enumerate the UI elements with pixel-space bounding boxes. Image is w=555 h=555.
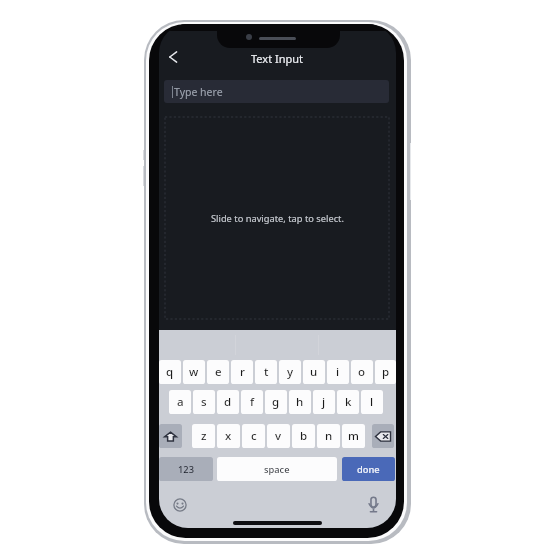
button[interactable]: g [265,390,287,414]
button[interactable]: o [351,360,373,384]
button[interactable]: 123 [159,457,213,481]
staticText: v [275,428,282,444]
button[interactable]: z [192,424,215,448]
button[interactable]: Back [162,46,184,68]
staticText: s [201,394,207,410]
button[interactable]: w [183,360,205,384]
staticText: g [272,394,280,410]
button[interactable]: done [342,457,395,481]
staticText: e [215,364,222,380]
button[interactable]: a [169,390,191,414]
staticText: u [310,364,318,380]
button[interactable]: space [217,457,337,481]
staticText: c [251,428,257,444]
button[interactable]: m [342,424,365,448]
staticText: p [382,364,390,380]
button[interactable]: b [292,424,315,448]
button[interactable]: Backspace [372,424,394,448]
staticText: 123 [178,463,194,476]
button[interactable]: h [289,390,311,414]
staticText: space [264,463,290,476]
button[interactable]: Type here [164,80,389,103]
staticText: Type here [174,85,223,99]
staticText: k [345,394,352,410]
staticText: o [358,364,366,380]
staticText: l [370,394,374,410]
button[interactable]: y [279,360,301,384]
staticText: b [300,428,308,444]
staticText: z [201,428,207,444]
button[interactable]: k [337,390,359,414]
button[interactable]: i [327,360,349,384]
button[interactable]: r [231,360,253,384]
staticText: a [177,394,184,410]
staticText: y [287,364,294,380]
button[interactable]: x [217,424,240,448]
staticText: Slide to navigate, tap to select. [211,212,344,225]
staticText: r [240,364,245,380]
button[interactable]: f [241,390,263,414]
staticText: w [189,364,199,380]
staticText: Text Input [251,51,304,66]
button[interactable]: j [313,390,335,414]
staticText: n [325,428,333,444]
button[interactable]: q [159,360,181,384]
button[interactable]: Emoji [173,498,187,512]
button[interactable]: Shift [159,424,182,448]
staticText: done [357,463,380,476]
staticText: j [322,394,326,410]
button[interactable]: p [375,360,396,384]
staticText: i [336,364,340,380]
button[interactable]: c [242,424,265,448]
button[interactable]: s [193,390,215,414]
button[interactable]: v [267,424,290,448]
button[interactable]: e [207,360,229,384]
staticText: f [250,394,255,410]
button[interactable]: t [255,360,277,384]
button[interactable]: Voice input [368,497,379,512]
staticText: d [224,394,232,410]
button[interactable]: u [303,360,325,384]
staticText: x [225,428,232,444]
button[interactable]: l [361,390,383,414]
button[interactable]: n [317,424,340,448]
staticText: m [348,428,359,444]
staticText: t [264,364,269,380]
staticText: q [166,364,174,380]
button[interactable]: d [217,390,239,414]
staticText: h [296,394,304,410]
